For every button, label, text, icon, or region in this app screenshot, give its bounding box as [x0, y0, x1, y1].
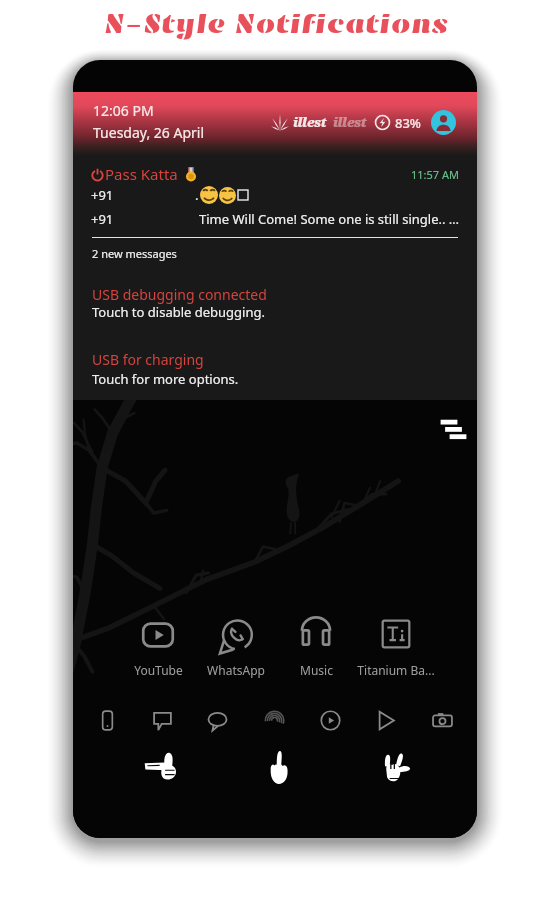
staticText: +91 [91, 210, 114, 228]
staticText: USB debugging connected [92, 285, 267, 304]
staticText: Touch to disable debugging. [92, 303, 265, 321]
button[interactable]: Phone [87, 700, 127, 740]
button[interactable]: Play [310, 700, 350, 740]
staticText: Time Will Come! Some one is still single… [199, 210, 465, 228]
staticText: 2 new messages [92, 246, 177, 261]
staticText: Titanium Ba... [357, 662, 435, 678]
staticText: YouTube [134, 662, 183, 678]
staticText: Tuesday, 26 April [93, 123, 204, 142]
staticText: 83% [395, 114, 421, 132]
staticText: 11:57 AM [411, 167, 459, 182]
button[interactable]: Chat [197, 700, 237, 740]
button[interactable] [273, 613, 359, 673]
button[interactable]: Back [131, 745, 191, 789]
staticText: illest [333, 113, 367, 131]
staticText: N-Style Notifications [104, 8, 448, 41]
staticText: USB for charging [92, 350, 204, 369]
staticText: +91 [91, 186, 114, 204]
staticText: WhatsApp [207, 662, 265, 678]
staticText: Touch for more options. [92, 370, 239, 388]
button[interactable] [193, 619, 279, 679]
staticText: illest [293, 113, 327, 131]
staticText: Music [300, 662, 333, 678]
button[interactable]: Fingerprint [254, 700, 294, 740]
button[interactable]: Recent apps [437, 414, 467, 440]
button[interactable]: Home [249, 745, 309, 789]
button[interactable]: Camera [422, 700, 462, 740]
button[interactable]: Play Store [365, 700, 405, 740]
staticText: 12:06 PM [93, 101, 154, 120]
button[interactable] [115, 617, 201, 677]
button[interactable]: Recent apps [365, 745, 425, 789]
button[interactable]: Messages [142, 700, 182, 740]
staticText: Pass Katta [105, 164, 178, 184]
button[interactable] [353, 616, 439, 676]
staticText: . [195, 186, 199, 204]
